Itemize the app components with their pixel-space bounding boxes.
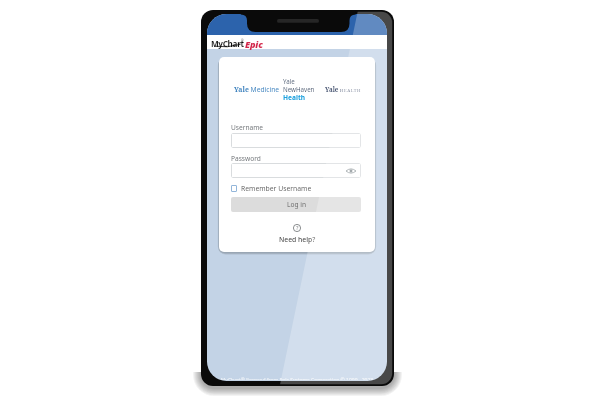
staticText: Health [283,93,306,101]
staticText: Log in [287,200,306,209]
staticText: Remember Username [241,184,312,193]
staticText: Need help? [279,235,316,244]
staticText: MyChart [211,38,244,49]
button[interactable]: Log in [231,197,361,212]
button[interactable]: ? [219,224,375,244]
staticText: Username [231,123,264,132]
button[interactable] [231,133,361,148]
staticText: ? [296,224,299,232]
staticText: NewHaven [283,85,315,93]
button[interactable]: Show password [231,163,361,178]
staticText: MyChart® licensed from Epic Systems Corp… [207,377,387,380]
staticText: Yale Medicine [234,85,280,94]
staticText: ® [241,39,244,43]
staticText: Epic [245,38,263,50]
staticText: Password [231,154,261,163]
staticText: Yale [283,77,295,85]
button[interactable]: Remember Username [231,184,312,193]
button[interactable]: Show password [345,165,357,177]
staticText: Yale HEALTH [325,85,361,93]
